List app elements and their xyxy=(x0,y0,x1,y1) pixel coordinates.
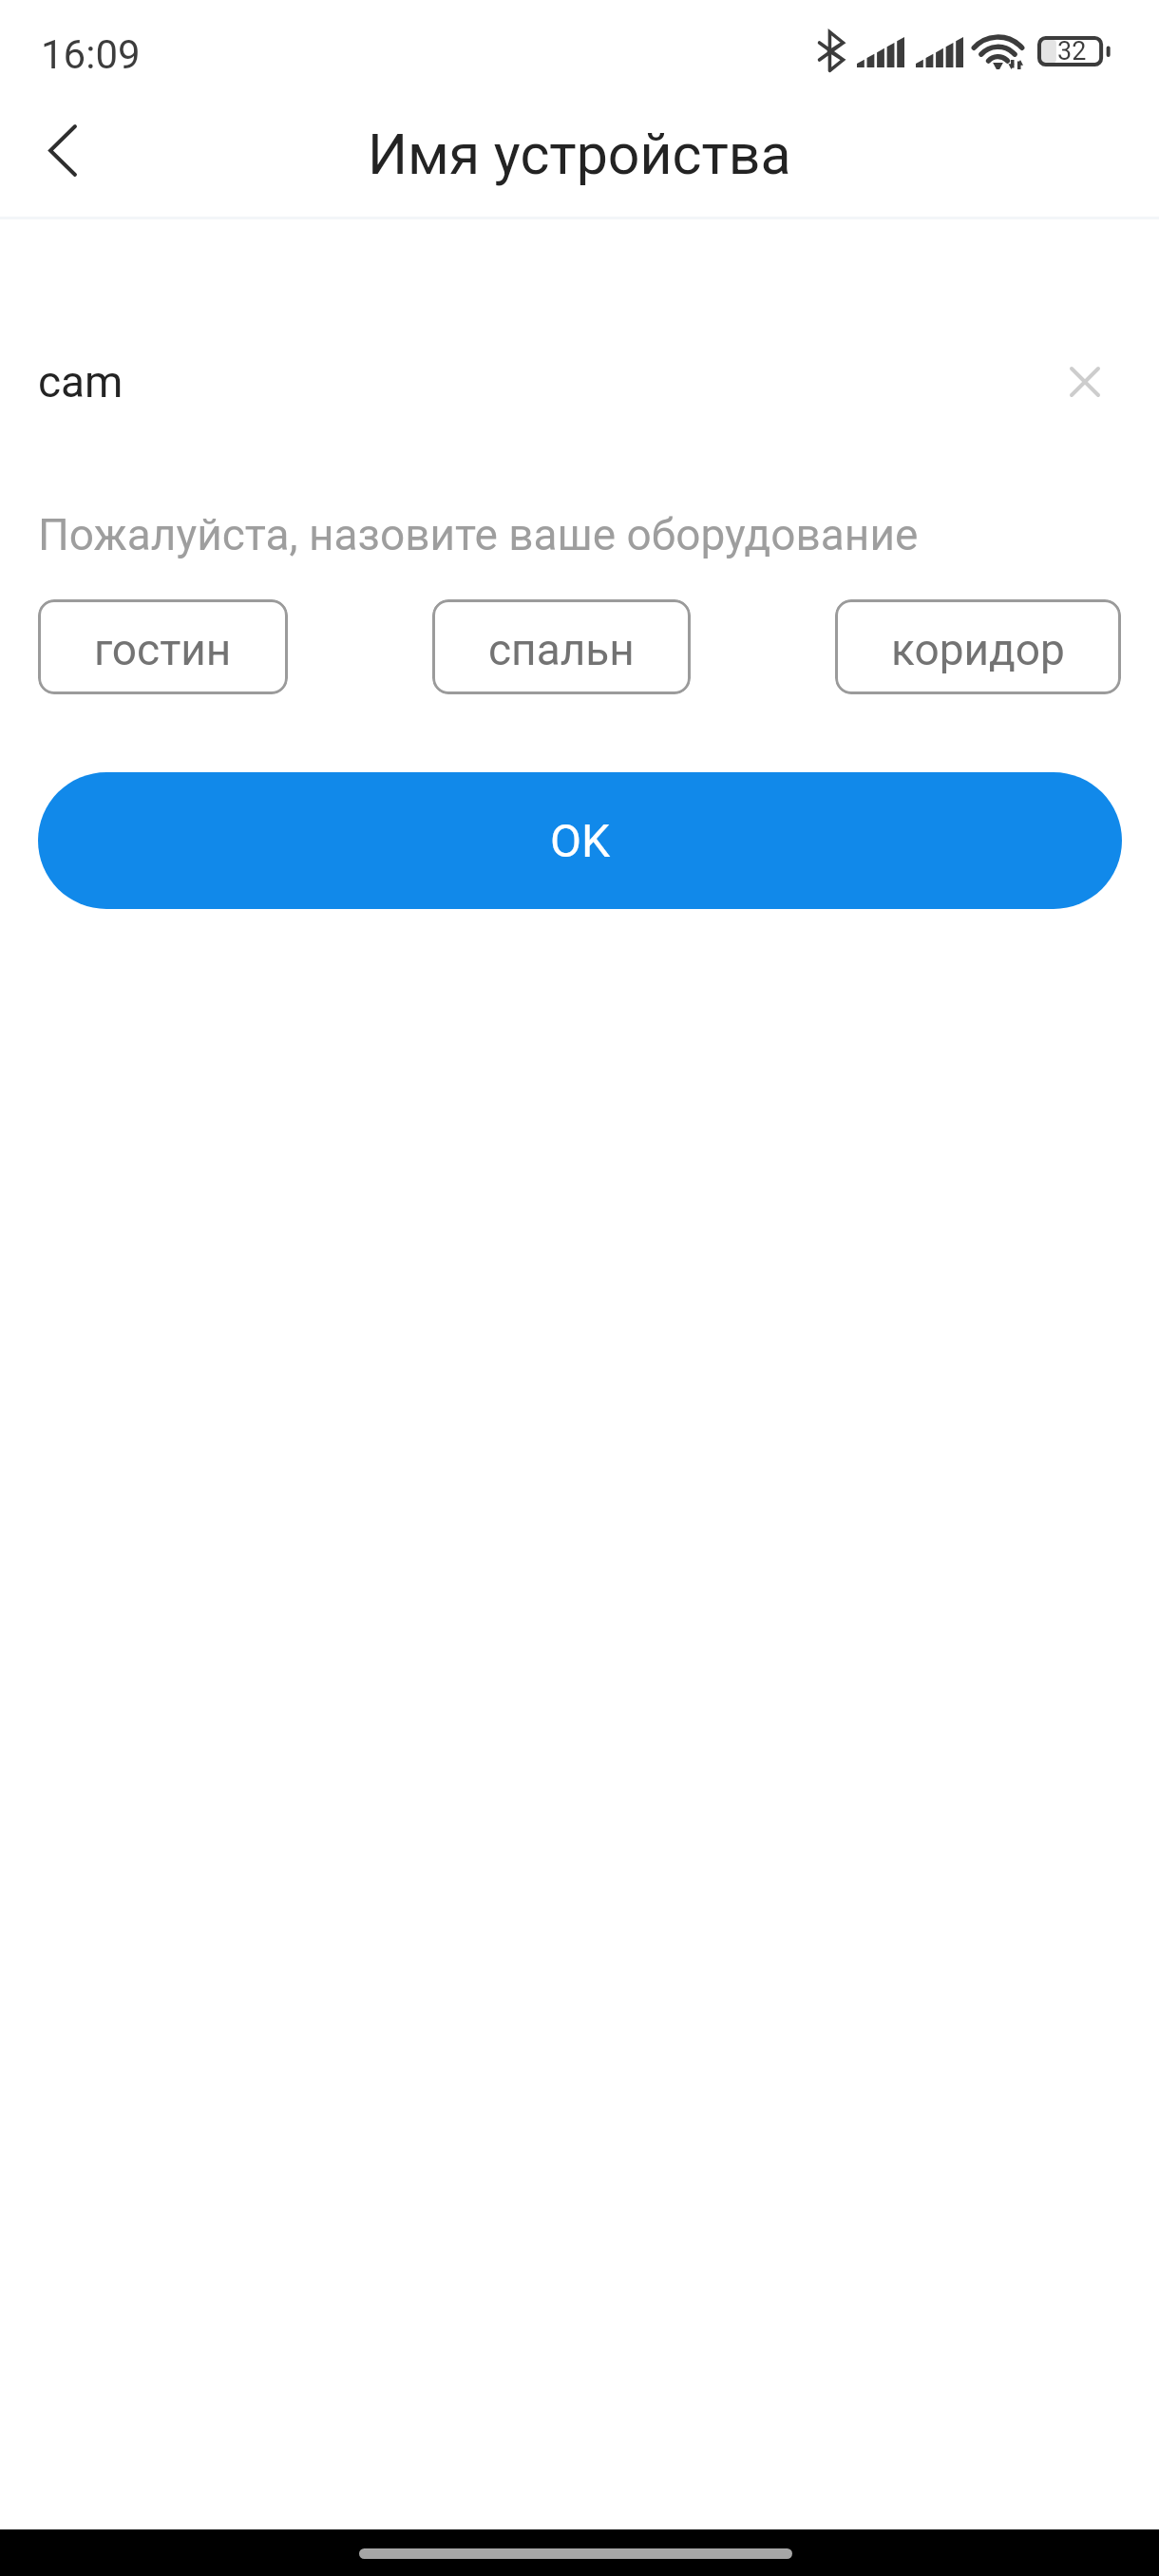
button[interactable]: OK xyxy=(38,772,1122,909)
staticText: гостин xyxy=(94,624,232,675)
button[interactable]: спальн xyxy=(432,599,691,694)
button[interactable]: Clear text xyxy=(1034,330,1136,432)
button[interactable]: Back xyxy=(8,93,118,207)
staticText: спальн xyxy=(488,624,635,675)
staticText: коридор xyxy=(891,624,1065,675)
staticText: Имя устройства xyxy=(368,122,791,187)
staticText: 32 xyxy=(1057,36,1087,66)
button[interactable]: cam xyxy=(0,313,1159,446)
button[interactable]: коридор xyxy=(835,599,1121,694)
button[interactable]: гостин xyxy=(38,599,288,694)
other: Home xyxy=(359,2548,792,2559)
staticText: 16:09 xyxy=(41,31,141,78)
staticText: Пожалуйста, назовите ваше оборудование xyxy=(38,509,919,560)
staticText: OK xyxy=(550,814,611,867)
staticText: cam xyxy=(38,356,123,407)
